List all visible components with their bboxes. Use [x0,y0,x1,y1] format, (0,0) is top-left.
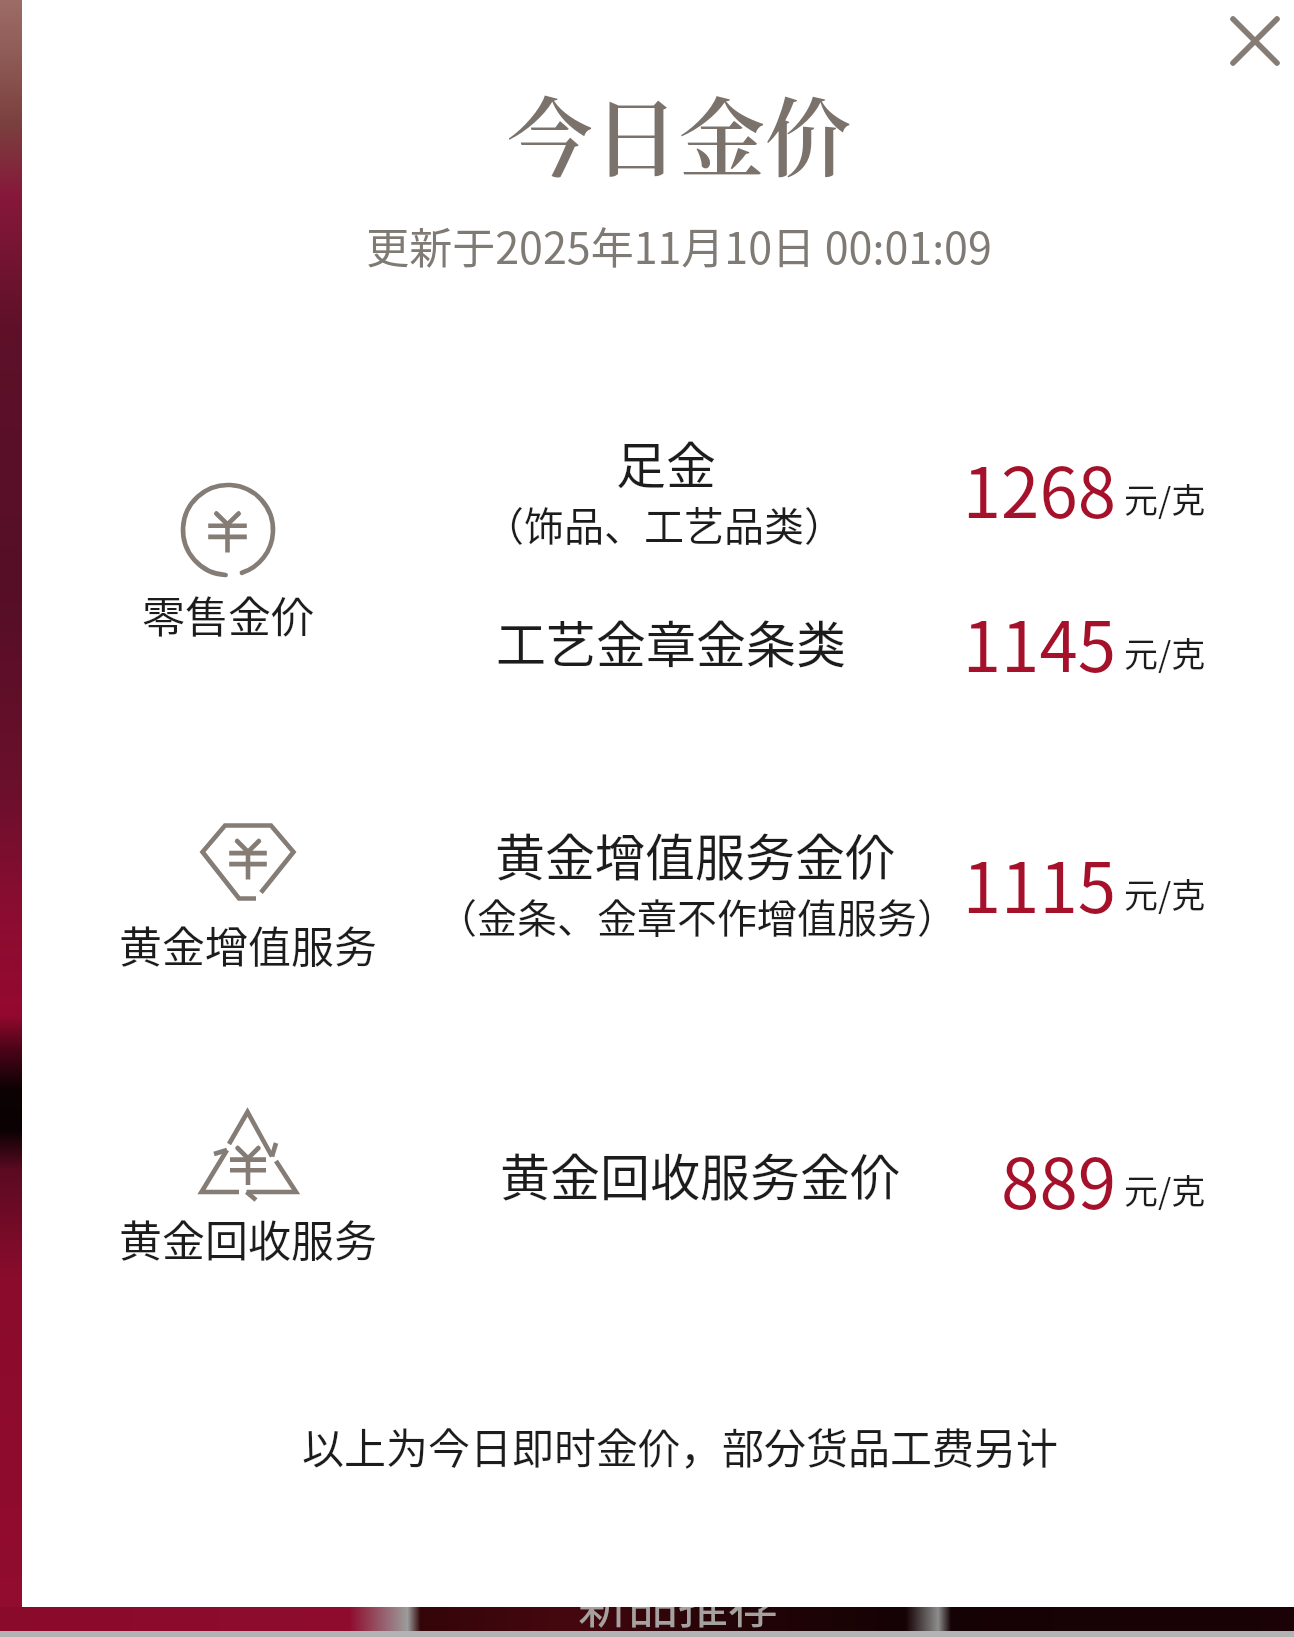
staticText: 新品推荐 [578,1565,778,1637]
staticText: 今日金价 [59,71,1294,195]
staticText: （饰品、工艺品类） [44,495,1284,553]
staticText: 元/克 [1124,1165,1294,1214]
staticText: （金条、金章不作增值服务） [77,887,1294,945]
staticText: 更新于2025年11月10日 00:01:09 [59,214,1294,276]
staticText: 元/克 [1124,628,1294,677]
staticText: 以上为今日即时金价，部分货品工费另计 [60,1415,1294,1476]
staticText: 足金 [46,426,1286,498]
staticText: 黄金增值服务 [0,913,868,975]
staticText: 黄金回收服务 [0,1207,868,1269]
staticText: 黄金增值服务金价 [75,818,1294,890]
staticText: 元/克 [1124,474,1294,523]
staticText: 元/克 [1124,869,1294,918]
staticText: 889 [616,1129,1116,1229]
staticText: 1145 [616,592,1116,692]
staticText: 黄金回收服务金价 [80,1138,1294,1210]
staticText: 1115 [616,833,1116,933]
button[interactable]: Close [1215,0,1294,82]
staticText: 零售金价 [0,583,848,645]
staticText: 1268 [616,438,1116,538]
staticText: 工艺金章金条类 [51,605,1291,677]
